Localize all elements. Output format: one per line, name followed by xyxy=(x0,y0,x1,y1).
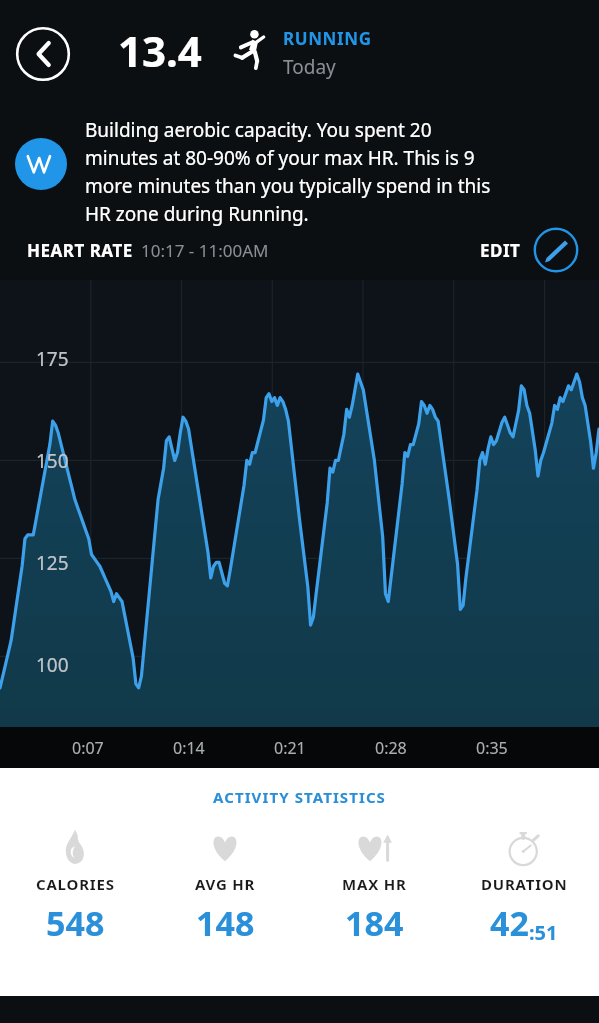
staticText: 0:35 xyxy=(476,737,508,759)
staticText: Today xyxy=(283,54,336,80)
staticText: 0:14 xyxy=(173,737,205,759)
staticText: RUNNING xyxy=(283,27,372,50)
staticText: more minutes than you typically spend in… xyxy=(85,173,491,199)
staticText: 148 xyxy=(196,900,255,946)
staticText: HEART RATE xyxy=(27,239,133,262)
staticText: DURATION xyxy=(481,874,568,894)
staticText: Building aerobic capacity. You spent 20 xyxy=(85,117,432,143)
staticText: MAX HR xyxy=(342,874,407,894)
staticText: 184 xyxy=(345,900,404,946)
staticText: ACTIVITY STATISTICS xyxy=(213,787,386,807)
staticText: 0:21 xyxy=(274,737,306,759)
staticText: 175 xyxy=(36,346,69,372)
staticText: minutes at 80-90% of your max HR. This i… xyxy=(85,145,475,171)
button[interactable]: MAX HR xyxy=(300,826,448,946)
staticText: 548 xyxy=(46,900,105,946)
staticText: 125 xyxy=(36,550,69,576)
staticText: 150 xyxy=(36,448,69,474)
staticText: 0:07 xyxy=(72,737,104,759)
staticText: CALORIES xyxy=(36,874,115,894)
staticText: 100 xyxy=(36,652,69,678)
staticText: :51 xyxy=(529,919,558,946)
staticText: 13.4 xyxy=(118,22,202,79)
button[interactable]: CALORIES xyxy=(1,826,149,946)
button[interactable]: Building aerobic capacity. You spent 20 xyxy=(15,108,569,220)
staticText: 10:17 - 11:00AM xyxy=(141,239,269,262)
staticText: HR zone during Running. xyxy=(85,201,309,227)
staticText: 42 xyxy=(490,900,529,946)
button[interactable]: DURATION xyxy=(450,826,598,946)
other: Edit xyxy=(533,227,579,273)
staticText: EDIT xyxy=(480,239,521,262)
staticText: AVG HR xyxy=(195,874,256,894)
button[interactable]: AVG HR xyxy=(151,826,299,946)
staticText: 0:28 xyxy=(375,737,407,759)
button[interactable]: Back xyxy=(15,26,71,82)
button[interactable]: EDIT xyxy=(480,227,579,273)
